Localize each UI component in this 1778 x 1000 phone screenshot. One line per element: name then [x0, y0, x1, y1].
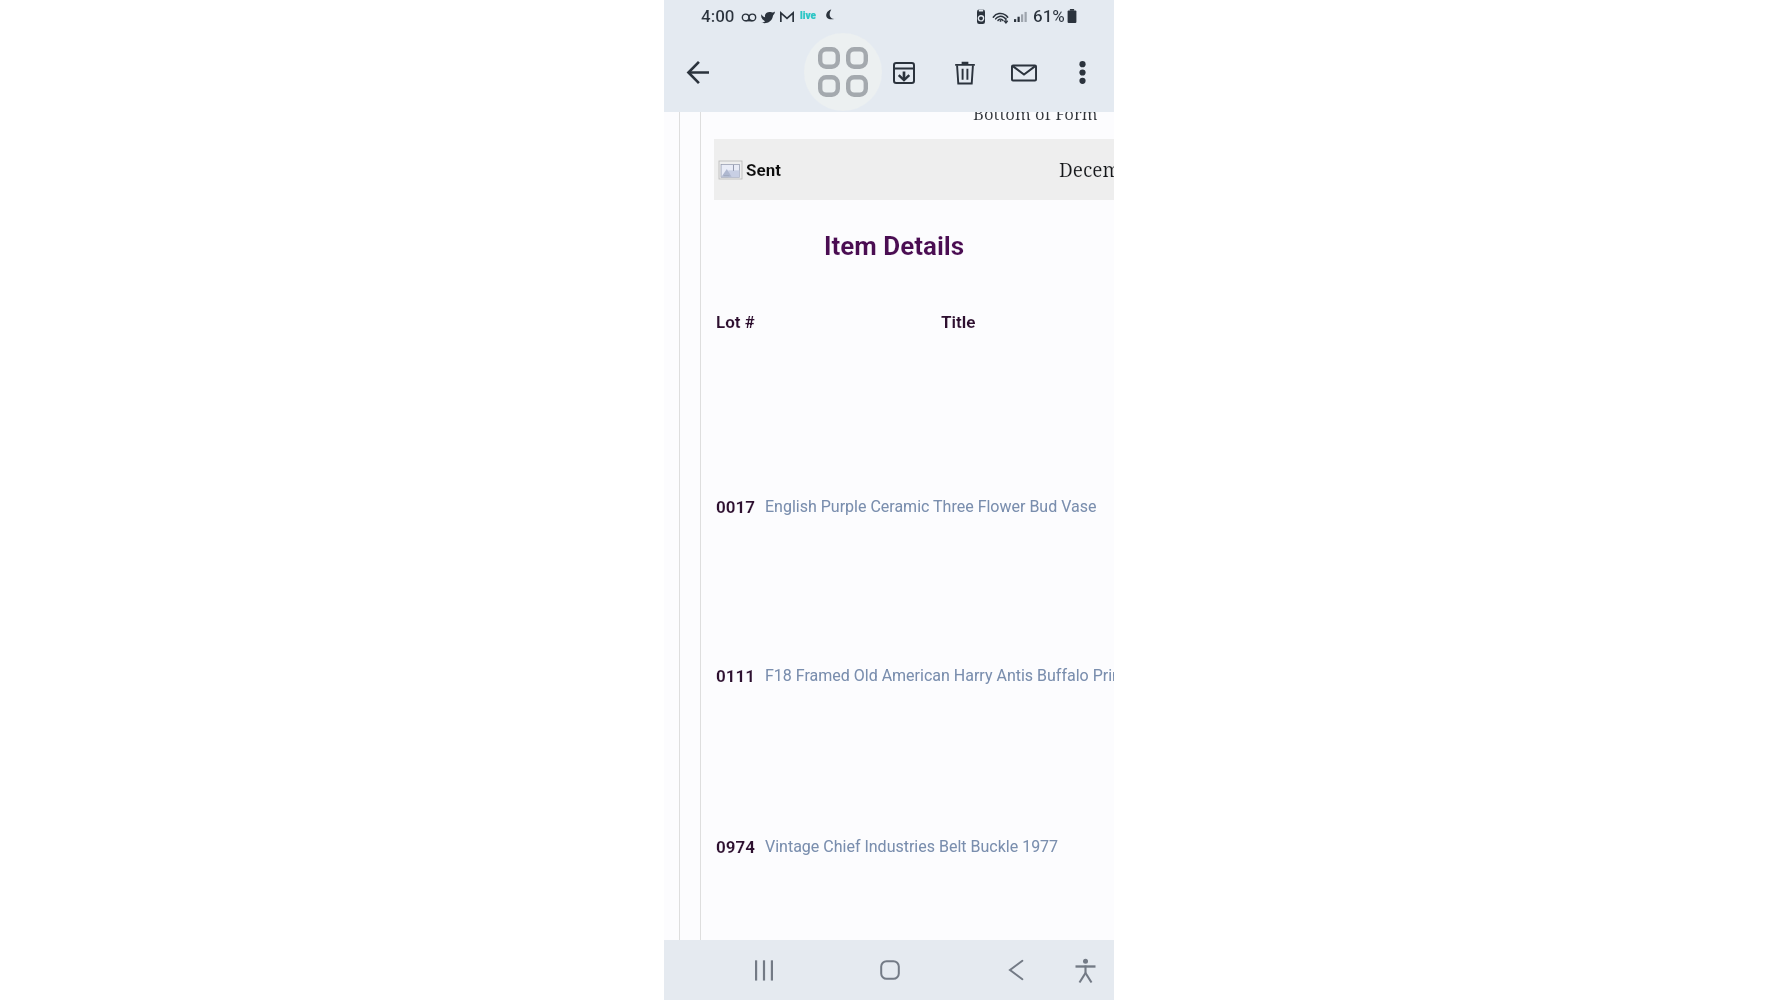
staticText: English Purple Ceramic Three Flower Bud …: [765, 497, 1097, 516]
staticText: Lot #: [716, 312, 755, 332]
button[interactable]: Archive: [882, 51, 926, 95]
button[interactable]: Home: [868, 948, 912, 992]
button[interactable]: More options: [1060, 50, 1104, 94]
staticText: Sent: [746, 160, 781, 180]
staticText: Vintage Chief Industries Belt Buckle 197…: [765, 837, 1059, 856]
button[interactable]: 0017: [716, 485, 1114, 527]
button[interactable]: Back: [994, 948, 1038, 992]
staticText: Item Details: [706, 231, 1082, 261]
button[interactable]: 0111: [716, 654, 1114, 696]
button[interactable]: Back: [676, 50, 720, 94]
staticText: F18 Framed Old American Harry Antis Buff…: [765, 666, 1114, 685]
button[interactable]: Apps: [804, 33, 882, 111]
button[interactable]: Accessibility: [1063, 948, 1107, 992]
button[interactable]: Sent: [714, 139, 1114, 200]
staticText: Title: [941, 312, 976, 332]
button[interactable]: Delete: [943, 51, 987, 95]
button[interactable]: Recents: [742, 948, 786, 992]
staticText: 4:00: [701, 6, 735, 26]
staticText: December 5, 2023: [1059, 157, 1114, 183]
staticText: 61%: [1033, 6, 1065, 26]
staticText: 0111: [716, 666, 756, 686]
staticText: live: [800, 10, 817, 22]
staticText: 0974: [716, 837, 756, 857]
button[interactable]: Mark unread: [1002, 51, 1046, 95]
staticText: Bottom of Form: [973, 102, 1098, 125]
staticText: 0017: [716, 497, 756, 517]
button[interactable]: 0974: [716, 825, 1114, 867]
